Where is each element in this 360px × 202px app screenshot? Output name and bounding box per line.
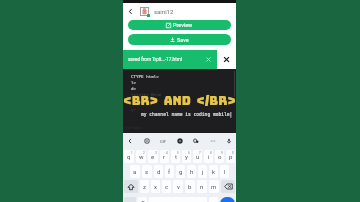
button[interactable]: Stickers (142, 136, 152, 146)
button[interactable]: j (198, 165, 207, 178)
staticText: s (145, 168, 149, 175)
staticText: j (202, 168, 204, 175)
button[interactable]: Emoji (138, 197, 147, 202)
staticText: 1 (131, 151, 133, 155)
staticText: 9 (221, 151, 223, 155)
button[interactable]: Clipboard (191, 136, 201, 146)
staticText: d (157, 168, 161, 175)
staticText: 2 (143, 151, 145, 155)
staticText: a (133, 168, 137, 175)
staticText: 5 (177, 151, 179, 155)
staticText: d> (131, 86, 137, 91)
staticText: Preview (173, 22, 193, 28)
staticText: l> (131, 80, 137, 85)
button[interactable]: b (185, 180, 195, 193)
staticText: x (154, 183, 157, 190)
button[interactable]: e (148, 150, 158, 163)
staticText: 8 (210, 151, 212, 155)
button[interactable]: Close (217, 50, 236, 69)
button[interactable]: m (209, 180, 219, 193)
staticText: q (127, 153, 131, 160)
button[interactable]: GIF (158, 136, 168, 146)
button[interactable]: y (182, 150, 191, 163)
staticText: c (165, 183, 169, 190)
staticText: z (143, 183, 146, 190)
staticText: v (177, 183, 180, 190)
staticText: u (196, 153, 200, 160)
staticText: GIF (160, 139, 167, 144)
staticText: 0 (232, 151, 234, 155)
button[interactable]: Save (128, 34, 231, 45)
button[interactable]: Settings (175, 136, 185, 146)
button[interactable]: c (162, 180, 171, 193)
button[interactable]: g (176, 165, 185, 178)
button[interactable]: l (220, 165, 229, 178)
button[interactable]: Dismiss (205, 56, 212, 63)
button[interactable]: Enter (220, 197, 235, 202)
staticText: e (151, 153, 155, 160)
staticText: 6 (188, 151, 190, 155)
button[interactable]: Shift (124, 180, 138, 193)
staticText: ns/tml> (125, 125, 143, 130)
staticText: t (175, 153, 177, 160)
staticText: w (139, 153, 144, 160)
button[interactable]: p (226, 150, 235, 163)
button[interactable]: Preview (128, 20, 231, 30)
button[interactable]: o (215, 150, 224, 163)
staticText: <style> Broe (131, 92, 162, 97)
button[interactable]: n (197, 180, 207, 193)
staticText: 3 (155, 151, 157, 155)
staticText: l (224, 168, 226, 175)
staticText: saini12 (154, 8, 174, 15)
button[interactable]: h (187, 165, 196, 178)
button[interactable]: s (142, 165, 152, 178)
button[interactable]: x (151, 180, 160, 193)
button[interactable]: a (130, 165, 140, 178)
button[interactable]: Voice input (224, 136, 234, 146)
staticText: CTYPE html> (131, 74, 159, 79)
staticText: b (188, 183, 192, 190)
button[interactable]: f (165, 165, 174, 178)
staticText: <BR> AND </BR> (123, 93, 236, 109)
staticText: o (218, 153, 222, 160)
staticText: Save (177, 37, 189, 43)
staticText: y> (131, 107, 137, 112)
button[interactable]: t (171, 150, 180, 163)
staticText: k (212, 168, 216, 175)
button[interactable]: d (154, 165, 163, 178)
staticText: n (200, 183, 204, 190)
button[interactable]: u (193, 150, 202, 163)
staticText: r (163, 153, 166, 160)
staticText: g (179, 168, 183, 175)
staticText: p (229, 153, 233, 160)
button[interactable]: i (204, 150, 213, 163)
button[interactable]: k (209, 165, 218, 178)
staticText: 7 (199, 151, 201, 155)
button[interactable]: More options (208, 136, 218, 146)
staticText: i (208, 153, 210, 160)
button[interactable]: r (160, 150, 169, 163)
staticText: f (168, 168, 171, 175)
staticText: h (190, 168, 194, 175)
button[interactable]: Back (125, 6, 136, 17)
button[interactable]: Backspace (221, 180, 235, 193)
button[interactable]: w (136, 150, 146, 163)
staticText: my channel name is coding mobile| (141, 112, 233, 117)
staticText: m (211, 183, 217, 190)
button[interactable]: v (173, 180, 183, 193)
button[interactable]: Back (125, 136, 135, 146)
button[interactable]: z (140, 180, 149, 193)
button[interactable]: q (124, 150, 134, 163)
staticText: saved from Trplt...-17.html (128, 57, 182, 62)
staticText: y (185, 153, 188, 160)
staticText: 4 (166, 151, 168, 155)
